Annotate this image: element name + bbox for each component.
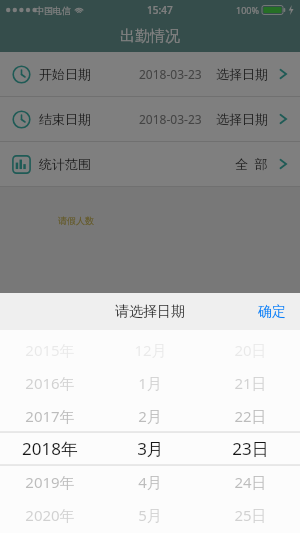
staticText: 选择日期 [216, 111, 268, 127]
staticText: 12月 [134, 340, 167, 360]
staticText: 全 部 [235, 155, 268, 173]
staticText: 25日 [234, 505, 267, 525]
staticText: 结束日期 [39, 111, 91, 127]
staticText: 2020年 [25, 505, 75, 525]
staticText: 请假人数 [58, 215, 94, 226]
staticText: 3月 [137, 437, 164, 460]
staticText: 选择日期 [216, 66, 268, 82]
staticText: 2016年 [25, 373, 75, 393]
staticText: 2018年 [22, 437, 78, 460]
button[interactable]: 2018年 [0, 432, 300, 465]
staticText: 15:47 [147, 3, 173, 17]
staticText: 2018-03-23 [139, 66, 202, 82]
button[interactable]: 2017年 [0, 399, 300, 432]
staticText: 请选择日期 [115, 303, 185, 321]
staticText: 统计范围 [39, 156, 91, 172]
staticText: 5月 [138, 505, 162, 525]
staticText: 确定 [258, 303, 286, 321]
staticText: 24日 [234, 472, 267, 492]
staticText: 2月 [138, 406, 162, 426]
staticText: 21日 [234, 373, 267, 393]
staticText: 开始日期 [39, 66, 91, 82]
staticText: 2015年 [25, 340, 75, 360]
button[interactable]: 2020年 [0, 498, 300, 531]
staticText: 中国电信 [35, 5, 71, 16]
staticText: 23日 [232, 437, 269, 460]
staticText: 4月 [138, 472, 162, 492]
button[interactable]: 2016年 [0, 366, 300, 399]
button[interactable]: 确定 [244, 293, 300, 330]
staticText: 20日 [234, 340, 267, 360]
other: Open 结束日期 [274, 110, 292, 128]
staticText: 1月 [138, 373, 162, 393]
button[interactable]: 统计范围 [0, 142, 300, 186]
staticText: 100% [236, 4, 259, 16]
button[interactable]: 结束日期 [0, 97, 300, 141]
other: Open 统计范围 [274, 155, 292, 173]
staticText: 2019年 [25, 472, 75, 492]
other: Open 开始日期 [274, 65, 292, 83]
staticText: 2018-03-23 [139, 111, 202, 127]
button[interactable]: 开始日期 [0, 52, 300, 96]
button[interactable]: 2019年 [0, 465, 300, 498]
staticText: 出勤情况 [120, 27, 180, 46]
staticText: 2017年 [25, 406, 75, 426]
staticText: 22日 [234, 406, 267, 426]
